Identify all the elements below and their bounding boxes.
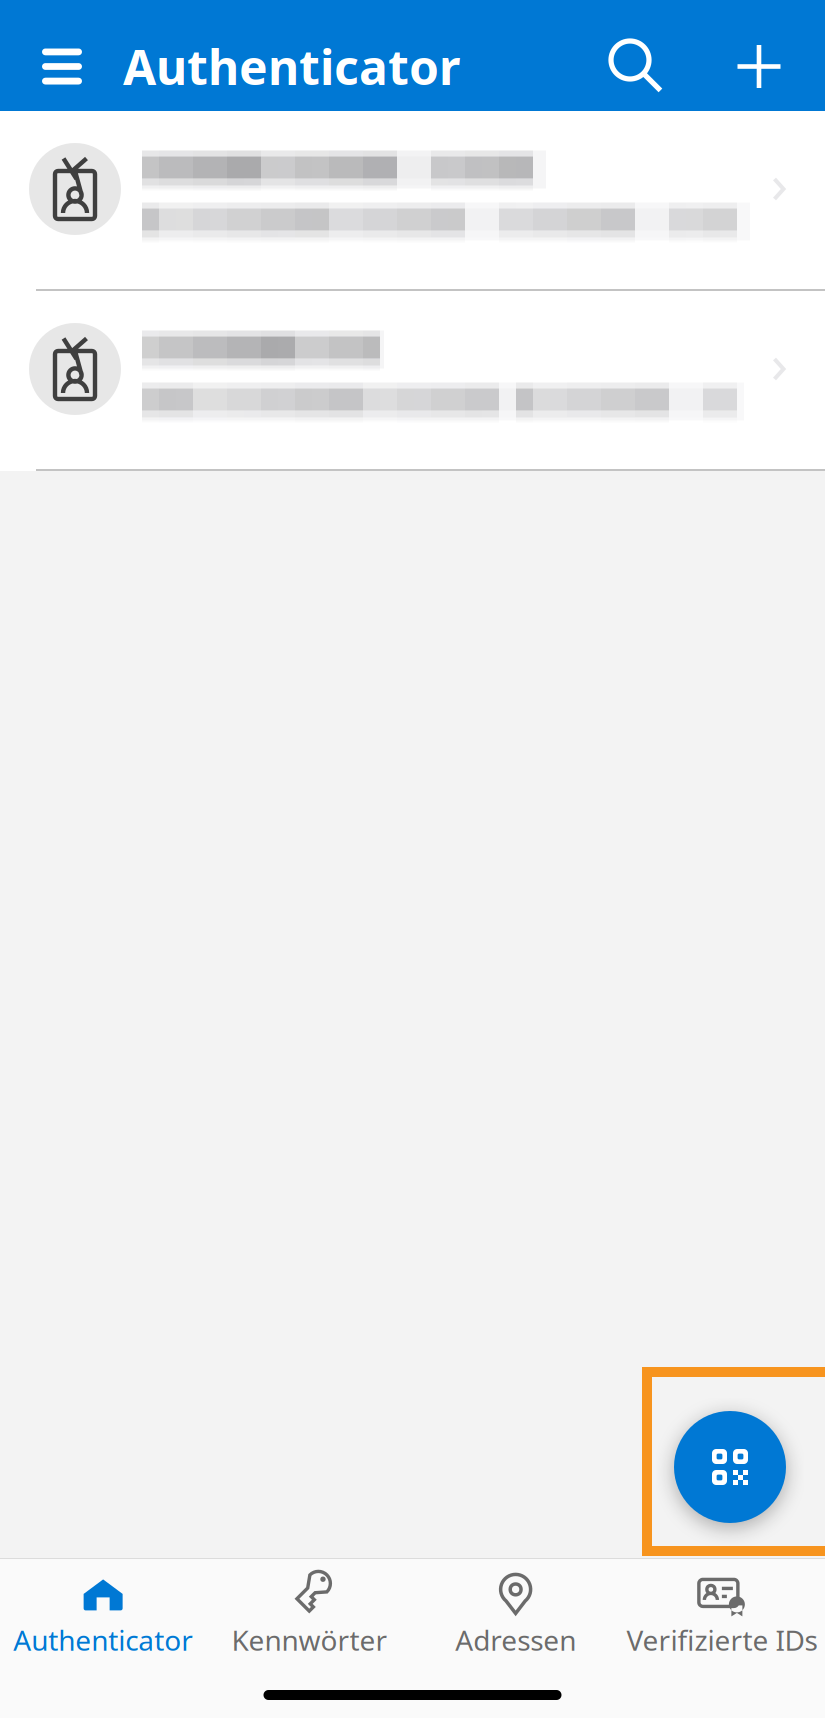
staticText: Adressen: [455, 1621, 576, 1659]
staticText: Authenticator: [13, 1621, 193, 1659]
button[interactable]: Verifizierte IDs: [619, 1563, 825, 1659]
button[interactable]: Search: [555, 22, 715, 111]
button[interactable]: Pass: [0, 111, 825, 289]
staticText: Verifizierte IDs: [626, 1621, 817, 1659]
button[interactable]: Authenticator: [0, 1563, 206, 1659]
button[interactable]: Menu: [22, 22, 102, 111]
button[interactable]: Scan QR code: [674, 1411, 786, 1523]
button[interactable]: Add: [715, 22, 803, 111]
button[interactable]: Adressen: [412, 1563, 619, 1659]
button[interactable]: Pass: [0, 291, 825, 469]
button[interactable]: Kennwörter: [206, 1563, 412, 1659]
staticText: Authenticator: [123, 35, 460, 98]
staticText: Kennwörter: [231, 1621, 387, 1659]
